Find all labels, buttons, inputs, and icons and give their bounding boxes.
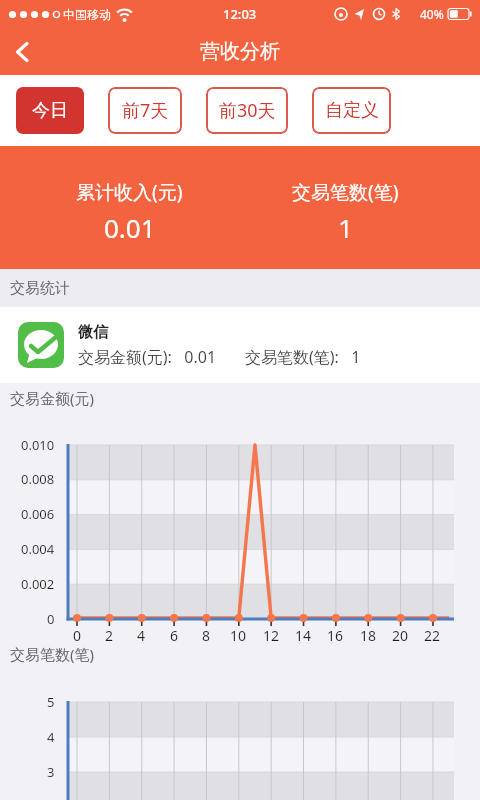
staticText: 16 bbox=[327, 626, 344, 645]
staticText: 4 bbox=[47, 728, 55, 746]
staticText: 0.010 bbox=[21, 436, 55, 454]
staticText: 0.004 bbox=[21, 540, 55, 558]
button[interactable]: 今日 bbox=[16, 87, 84, 134]
staticText: 交易金额(元): 0.01 bbox=[78, 346, 217, 368]
staticText: 18 bbox=[360, 626, 377, 645]
staticText: 0.008 bbox=[21, 470, 55, 488]
staticText: 交易统计 bbox=[10, 279, 70, 298]
staticText: 12 bbox=[263, 626, 280, 645]
button[interactable]: 自定义 bbox=[312, 87, 391, 134]
staticText: 1 bbox=[338, 210, 353, 245]
staticText: 交易金额(元) bbox=[10, 388, 95, 408]
staticText: 3 bbox=[47, 763, 55, 781]
staticText: 4 bbox=[137, 626, 146, 645]
staticText: 6 bbox=[170, 626, 179, 645]
staticText: 0.006 bbox=[21, 505, 55, 523]
staticText: 14 bbox=[295, 626, 312, 645]
staticText: 0 bbox=[73, 626, 82, 645]
staticText: 10 bbox=[230, 626, 247, 645]
staticText: 营收分析 bbox=[200, 39, 280, 64]
staticText: 8 bbox=[202, 626, 211, 645]
button[interactable] bbox=[0, 30, 44, 74]
staticText: 前7天 bbox=[122, 98, 169, 123]
staticText: 累计收入(元) bbox=[76, 179, 183, 205]
staticText: 0.002 bbox=[21, 575, 55, 593]
staticText: 40% bbox=[420, 6, 444, 22]
staticText: 交易笔数(笔) bbox=[10, 644, 95, 664]
button[interactable]: 微信 bbox=[0, 307, 480, 383]
staticText: 微信 bbox=[78, 323, 108, 342]
staticText: 交易笔数(笔) bbox=[292, 179, 399, 205]
staticText: 前30天 bbox=[219, 98, 276, 123]
staticText: 中国移动 bbox=[63, 7, 111, 22]
staticText: 0.01 bbox=[104, 210, 156, 245]
staticText: 2 bbox=[105, 626, 114, 645]
staticText: 12:03 bbox=[223, 5, 257, 23]
staticText: 今日 bbox=[32, 99, 68, 122]
staticText: 自定义 bbox=[325, 99, 379, 122]
button[interactable]: 前7天 bbox=[108, 87, 182, 134]
staticText: 22 bbox=[424, 626, 441, 645]
staticText: 0 bbox=[47, 610, 55, 628]
staticText: 20 bbox=[392, 626, 409, 645]
staticText: 交易笔数(笔): 1 bbox=[245, 346, 361, 368]
button[interactable]: 前30天 bbox=[206, 87, 288, 134]
staticText: 5 bbox=[47, 693, 55, 711]
